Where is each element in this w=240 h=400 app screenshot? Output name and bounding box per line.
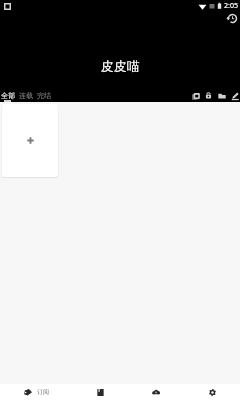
button[interactable]: 完结 (36, 91, 52, 100)
button[interactable]: Downloads (128, 384, 184, 400)
staticText: 2:05 (224, 1, 238, 11)
button[interactable]: Settings (184, 384, 240, 400)
button[interactable]: 订阅 (0, 384, 72, 400)
button[interactable]: Folder (215, 89, 228, 102)
button[interactable]: 连载 (18, 91, 34, 100)
staticText: 连载 (19, 91, 33, 100)
button[interactable]: Edit (228, 89, 240, 102)
button[interactable]: Add bookshelf (2, 104, 58, 177)
staticText: 全部 (1, 91, 15, 100)
button[interactable]: Lock (202, 89, 215, 102)
button[interactable]: Bookshelf (72, 384, 128, 400)
staticText: 订阅 (37, 388, 49, 396)
button[interactable]: 全部 (0, 91, 16, 100)
button[interactable]: History (226, 12, 238, 24)
staticText: 皮皮喵 (101, 58, 140, 74)
button[interactable]: Import books (189, 89, 202, 102)
staticText: 完结 (37, 91, 51, 100)
